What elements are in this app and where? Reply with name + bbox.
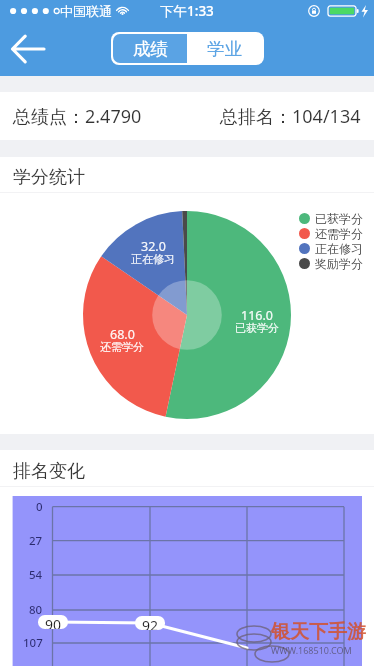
staticText: 排名变化 bbox=[13, 460, 85, 483]
staticText: 中国联通 bbox=[60, 3, 112, 19]
staticText: 已获学分 bbox=[315, 211, 363, 226]
button[interactable]: Back bbox=[4, 26, 50, 72]
staticText: 学业 bbox=[207, 38, 242, 60]
staticText: 成绩 bbox=[133, 38, 168, 60]
staticText: 92 bbox=[142, 616, 159, 630]
staticText: 32.0 bbox=[141, 238, 166, 255]
staticText: 学分统计 bbox=[13, 166, 85, 189]
staticText: 奖励学分 bbox=[315, 256, 363, 271]
staticText: 27 bbox=[29, 533, 43, 549]
staticText: WWW.168510.COM bbox=[271, 644, 352, 656]
button[interactable]: 学业 bbox=[187, 34, 262, 63]
staticText: 银天下手游 bbox=[271, 620, 366, 644]
staticText: 90 bbox=[45, 615, 62, 629]
staticText: 107 bbox=[23, 635, 43, 651]
staticText: 总排名：104/134 bbox=[220, 104, 361, 129]
staticText: 正在修习 bbox=[131, 252, 175, 266]
staticText: 116.0 bbox=[241, 307, 273, 324]
staticText: 总绩点：2.4790 bbox=[13, 104, 142, 129]
staticText: 下午1:33 bbox=[160, 2, 214, 20]
staticText: 80 bbox=[29, 602, 43, 618]
staticText: 已获学分 bbox=[235, 321, 279, 335]
staticText: 还需学分 bbox=[100, 340, 144, 354]
staticText: 68.0 bbox=[110, 326, 135, 343]
staticText: 还需学分 bbox=[315, 226, 363, 241]
staticText: 正在修习 bbox=[315, 241, 363, 256]
staticText: 54 bbox=[29, 567, 43, 583]
staticText: 0 bbox=[36, 499, 43, 515]
button[interactable]: 成绩 bbox=[113, 34, 187, 63]
